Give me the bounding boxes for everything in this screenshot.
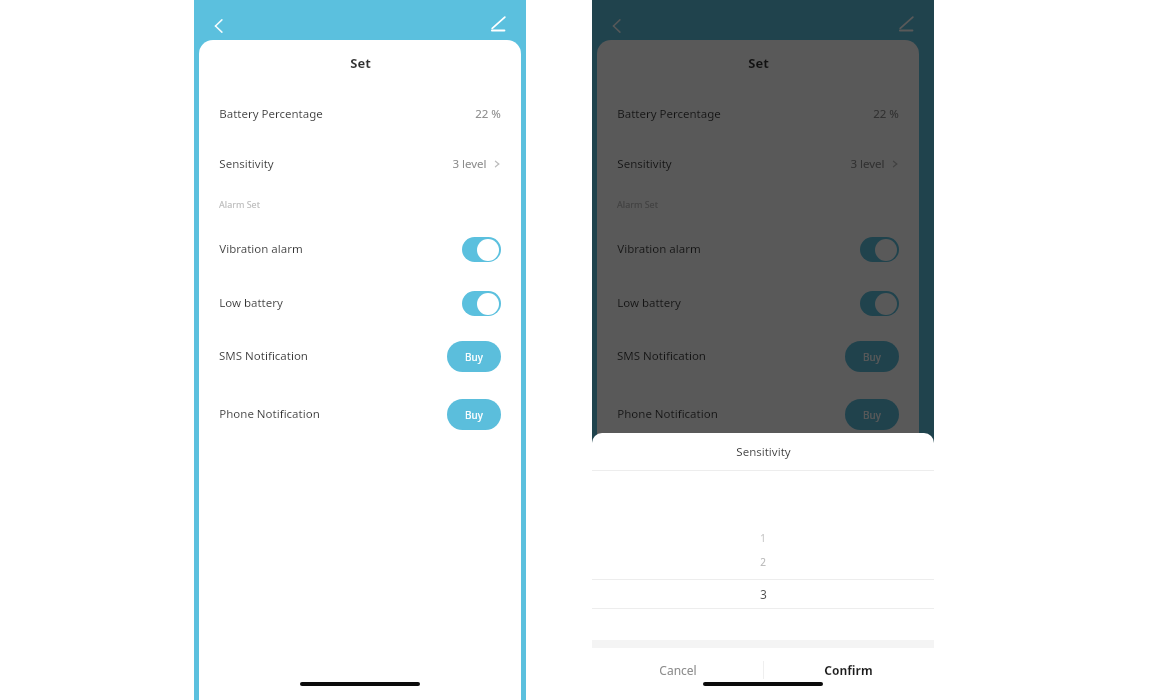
staticText: Vibration alarm xyxy=(219,241,303,257)
staticText: Confirm xyxy=(824,662,873,678)
button[interactable]: Battery Percentage xyxy=(199,101,521,127)
staticText: SMS Notification xyxy=(617,348,706,364)
staticText: Sensitivity xyxy=(617,156,672,172)
staticText: Cancel xyxy=(659,662,697,678)
staticText: Low battery xyxy=(617,295,681,311)
button[interactable]: Edit xyxy=(484,10,512,38)
staticText: SMS Notification xyxy=(219,348,308,364)
staticText: Alarm Set xyxy=(617,198,658,210)
button[interactable]: Buy xyxy=(845,399,899,430)
button[interactable] xyxy=(462,237,501,262)
button[interactable]: Back xyxy=(205,12,233,40)
button[interactable]: Edit xyxy=(892,10,920,38)
button[interactable] xyxy=(860,237,899,262)
staticText: 22 % xyxy=(475,106,501,122)
staticText: 22 % xyxy=(873,106,899,122)
button[interactable]: Buy xyxy=(447,341,501,372)
staticText: Set xyxy=(350,54,371,72)
button[interactable]: Cancel xyxy=(592,648,763,692)
staticText: Buy xyxy=(863,350,881,364)
button[interactable]: Back xyxy=(603,12,631,40)
button[interactable] xyxy=(860,291,899,316)
staticText: Sensitivity xyxy=(736,444,791,460)
staticText: Sensitivity xyxy=(219,156,274,172)
staticText: 3 level xyxy=(452,156,487,172)
button[interactable]: Battery Percentage xyxy=(597,101,919,127)
button[interactable]: Buy xyxy=(447,399,501,430)
button[interactable]: 3 xyxy=(592,579,934,608)
staticText: Battery Percentage xyxy=(617,106,721,122)
staticText: Vibration alarm xyxy=(617,241,701,257)
staticText: Alarm Set xyxy=(219,198,260,210)
staticText: 2 xyxy=(760,555,766,569)
button[interactable]: Sensitivity xyxy=(597,151,919,177)
button[interactable] xyxy=(462,291,501,316)
button[interactable]: Confirm xyxy=(763,648,934,692)
staticText: 3 xyxy=(760,586,767,602)
staticText: 3 level xyxy=(850,156,885,172)
staticText: Low battery xyxy=(219,295,283,311)
staticText: Phone Notification xyxy=(219,406,320,422)
button[interactable]: Low battery xyxy=(597,290,919,316)
staticText: Buy xyxy=(465,408,483,422)
staticText: Set xyxy=(748,54,769,72)
staticText: Phone Notification xyxy=(617,406,718,422)
staticText: Buy xyxy=(863,408,881,422)
staticText: Battery Percentage xyxy=(219,106,323,122)
button[interactable]: Vibration alarm xyxy=(597,236,919,262)
button[interactable]: Sensitivity xyxy=(199,151,521,177)
button[interactable]: Buy xyxy=(845,341,899,372)
button[interactable]: Low battery xyxy=(199,290,521,316)
staticText: Buy xyxy=(465,350,483,364)
button[interactable]: Vibration alarm xyxy=(199,236,521,262)
staticText: 1 xyxy=(760,531,766,545)
